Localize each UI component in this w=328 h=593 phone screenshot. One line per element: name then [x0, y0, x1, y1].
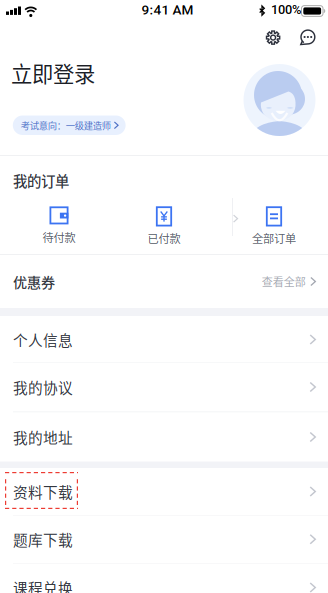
- button[interactable]: 全部订单: [240, 205, 308, 247]
- button[interactable]: 我的地址: [0, 412, 328, 461]
- button[interactable]: 我的协议: [0, 363, 328, 411]
- staticText: 资料下载: [13, 481, 73, 502]
- staticText: 我的地址: [13, 426, 73, 448]
- staticText: 个人信息: [13, 329, 73, 350]
- staticText: 考试意向：一级建造师: [21, 118, 111, 132]
- button[interactable]: 优惠券: [0, 255, 328, 308]
- button[interactable]: 题库下载: [0, 515, 328, 563]
- staticText: 我的协议: [13, 376, 73, 398]
- button[interactable]: 待付款: [29, 204, 89, 246]
- button[interactable]: Settings: [265, 30, 281, 45]
- staticText: 待付款: [42, 229, 75, 245]
- button[interactable]: 已付款: [134, 205, 194, 247]
- button[interactable]: Messages: [299, 30, 315, 45]
- button[interactable]: 考试意向：一级建造师: [13, 115, 126, 135]
- button[interactable]: 资料下载: [0, 468, 328, 515]
- staticText: 已付款: [147, 230, 180, 246]
- staticText: 课程兑换: [13, 577, 73, 593]
- staticText: 优惠券: [13, 271, 55, 292]
- staticText: 题库下载: [13, 529, 73, 550]
- button[interactable]: 个人信息: [0, 316, 328, 363]
- staticText: 立即登录: [11, 57, 95, 88]
- staticText: 我的订单: [13, 170, 69, 191]
- staticText: 全部订单: [252, 230, 296, 246]
- button[interactable]: 课程兑换: [0, 563, 328, 593]
- staticText: 查看全部: [262, 273, 306, 289]
- staticText: 100%: [271, 2, 301, 17]
- staticText: 9:41 AM: [141, 2, 193, 18]
